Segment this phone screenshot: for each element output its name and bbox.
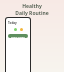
staticText: Healthy — [22, 3, 42, 10]
staticText: Today — [8, 21, 17, 25]
button[interactable]: Drink Water — [8, 34, 28, 38]
staticText: Drink Water — [11, 35, 26, 38]
staticText: Daily Routine — [15, 10, 49, 17]
